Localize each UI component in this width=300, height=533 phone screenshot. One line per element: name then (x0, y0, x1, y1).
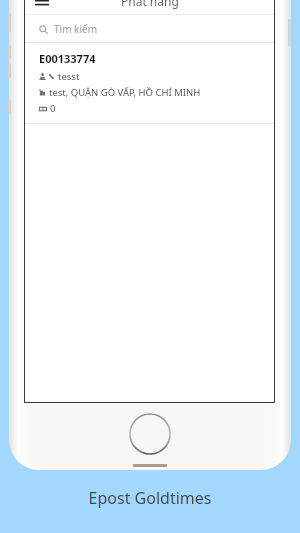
staticText: Epost Goldtimes (0, 487, 300, 509)
staticText: 0 (50, 102, 56, 115)
button[interactable]: Menu (31, 0, 53, 15)
staticText: Tìm kiếm (54, 22, 97, 36)
button[interactable]: Home (129, 413, 171, 455)
staticText: tesst (58, 70, 80, 83)
staticText: E00133774 (39, 51, 96, 66)
button[interactable]: E00133774 (25, 43, 274, 123)
staticText: Phát hàng (121, 0, 179, 9)
button[interactable]: Tìm kiếm (25, 15, 274, 43)
staticText: test, QUẬN GÒ VẤP, HỒ CHÍ MINH (49, 86, 201, 99)
